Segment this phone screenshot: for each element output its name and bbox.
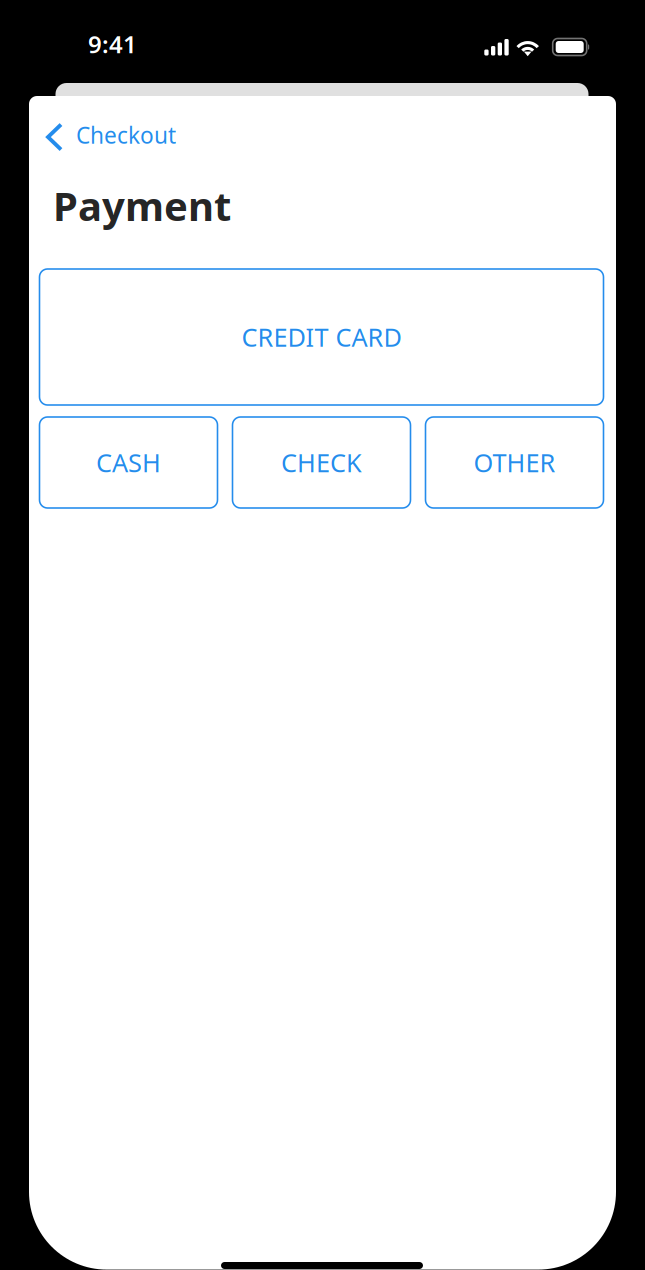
staticText: CREDIT CARD [241,320,401,354]
staticText: Checkout [76,120,176,150]
staticText: Payment [53,179,231,232]
button[interactable]: CASH [39,417,217,508]
button[interactable]: Checkout [42,112,180,158]
button[interactable]: CHECK [232,417,410,508]
staticText: 9:41 [88,28,137,60]
staticText: OTHER [473,446,555,479]
button[interactable]: OTHER [425,417,603,508]
staticText: CHECK [281,446,362,479]
button[interactable]: CREDIT CARD [39,269,603,405]
staticText: CASH [96,446,161,479]
